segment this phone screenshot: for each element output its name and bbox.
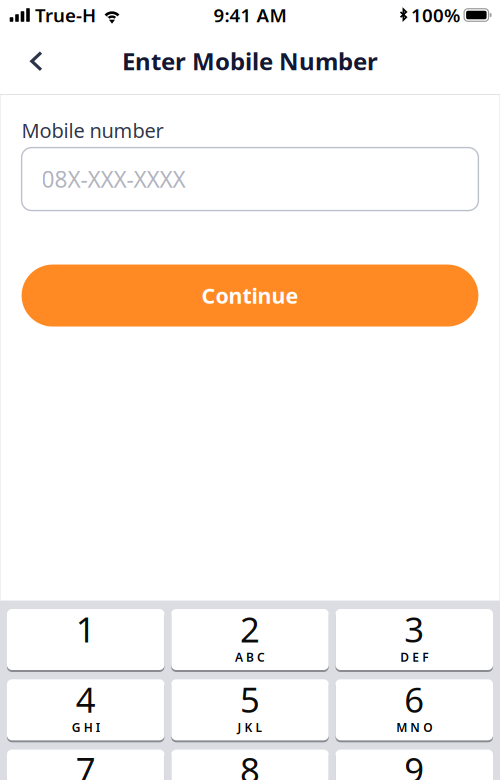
staticText: 100% <box>411 3 460 27</box>
button[interactable]: 9 <box>335 749 493 780</box>
staticText: True-H <box>35 3 96 27</box>
staticText: 1 <box>76 606 96 652</box>
staticText: Enter Mobile Number <box>122 45 378 77</box>
button[interactable]: 3 <box>335 608 493 671</box>
button[interactable]: 7 <box>7 749 164 780</box>
button[interactable]: Continue <box>22 265 478 327</box>
staticText: Mobile number <box>22 117 164 144</box>
button[interactable]: 8 <box>171 749 329 780</box>
staticText: D E F <box>400 649 428 665</box>
staticText: 3 <box>404 606 424 652</box>
staticText: 6 <box>404 676 424 722</box>
staticText: 5 <box>240 676 260 722</box>
staticText: 08X-XXX-XXXX <box>42 164 186 194</box>
staticText: 4 <box>76 676 96 722</box>
staticText: M N O <box>396 719 432 735</box>
button[interactable]: 1 <box>7 608 164 671</box>
button[interactable]: 4 <box>7 678 164 741</box>
staticText: 9:41 AM <box>213 3 286 27</box>
staticText: 8 <box>240 747 260 780</box>
staticText: 2 <box>240 606 260 652</box>
staticText: J K L <box>237 719 262 735</box>
staticText: 7 <box>76 747 96 780</box>
button[interactable]: Back <box>14 39 58 83</box>
staticText: G H I <box>72 719 100 735</box>
staticText: 9 <box>404 747 424 780</box>
staticText: Continue <box>201 281 298 310</box>
button[interactable]: 08X-XXX-XXXX <box>22 148 478 211</box>
button[interactable]: 6 <box>335 678 493 741</box>
staticText: A B C <box>235 649 265 665</box>
button[interactable]: 2 <box>171 608 329 671</box>
button[interactable]: 5 <box>171 678 329 741</box>
